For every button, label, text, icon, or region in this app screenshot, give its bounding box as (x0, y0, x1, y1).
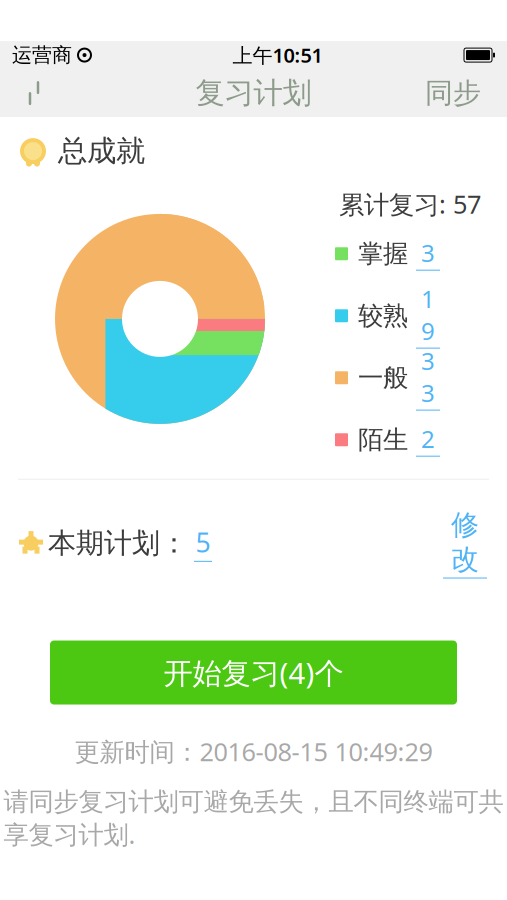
staticText: 陌生 (358, 424, 408, 455)
staticText: 更新时间：2016-08-15 10:49:29 (74, 734, 432, 768)
staticText: 同步 (425, 76, 481, 110)
button[interactable]: 3 (408, 237, 440, 271)
staticText: 19 (421, 283, 435, 347)
button[interactable]: 同步 (411, 73, 495, 113)
button[interactable]: 开始复习(4)个 (50, 640, 457, 704)
button[interactable]: 2 (408, 423, 440, 457)
staticText: 较熟 (358, 300, 408, 331)
staticText: 累计复习: 57 (339, 187, 481, 221)
staticText: 总成就 (58, 133, 145, 169)
button[interactable]: 19 (408, 283, 440, 349)
staticText: 本期计划： (48, 526, 188, 560)
button[interactable]: 5 (188, 524, 218, 562)
staticText: 一般 (358, 362, 408, 393)
staticText: 复习计划 (195, 75, 311, 111)
button[interactable]: 返回 (12, 73, 56, 113)
staticText: 33 (421, 345, 435, 409)
staticText: 上午10:51 (232, 42, 322, 68)
staticText: 开始复习(4)个 (163, 653, 343, 692)
staticText: 3 (421, 237, 435, 269)
staticText: 2 (421, 423, 435, 455)
staticText: 5 (195, 524, 210, 560)
staticText: 请同步复习计划可避免丢失，且不同终端可共享复习计划. (3, 786, 503, 851)
button[interactable]: 修改 (443, 508, 487, 578)
staticText: 修改 (451, 508, 479, 576)
staticText: 掌握 (358, 238, 408, 269)
staticText: 运营商 (12, 43, 72, 67)
button[interactable]: 33 (408, 345, 440, 411)
